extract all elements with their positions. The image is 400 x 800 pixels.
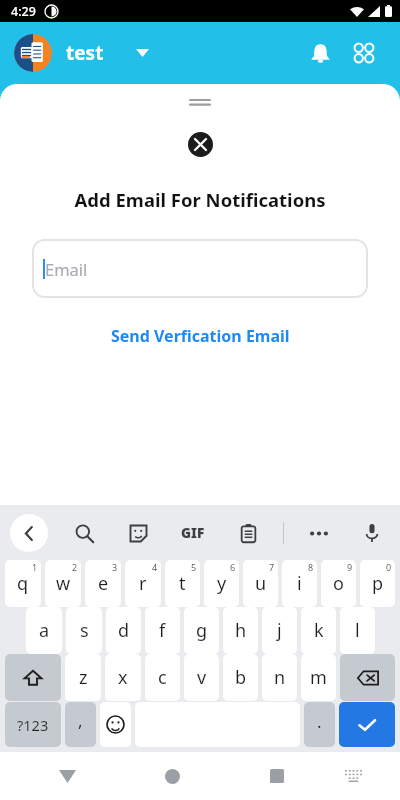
staticText: g (196, 618, 208, 643)
button[interactable]: Notifications (298, 31, 342, 75)
staticText: d (118, 618, 130, 643)
button[interactable]: s (66, 607, 102, 654)
button[interactable]: p (360, 560, 395, 607)
button[interactable]: Search (66, 515, 102, 551)
staticText: m (310, 665, 327, 690)
staticText: z (79, 665, 88, 690)
staticText: . (317, 710, 322, 733)
staticText: 9 (347, 561, 353, 573)
button[interactable]: h (223, 607, 258, 654)
button[interactable]: Emoji (100, 702, 131, 747)
staticText: 1 (32, 561, 38, 573)
button[interactable]: Back (45, 754, 89, 798)
staticText: s (80, 618, 89, 643)
button[interactable]: Shift (5, 654, 61, 701)
button[interactable]: j (262, 607, 297, 654)
button[interactable]: c (145, 654, 180, 701)
button[interactable]: m (301, 654, 336, 701)
button[interactable]: g (184, 607, 219, 654)
button[interactable]: Backspace (340, 654, 395, 701)
staticText: v (197, 665, 207, 690)
staticText: h (235, 618, 247, 643)
button[interactable]: l (340, 607, 375, 654)
staticText: o (333, 571, 344, 596)
staticText: 4 (152, 561, 158, 573)
staticText: 7 (269, 561, 275, 573)
button[interactable]: n (262, 654, 297, 701)
staticText: t (179, 571, 186, 596)
button[interactable]: r (125, 560, 161, 607)
staticText: q (17, 571, 29, 596)
button[interactable]: t (165, 560, 200, 607)
staticText: a (39, 618, 50, 643)
staticText: f (159, 618, 166, 643)
button[interactable]: Email (32, 239, 368, 298)
staticText: test (66, 40, 104, 66)
button[interactable]: z (65, 654, 101, 701)
staticText: Add Email For Notifications (74, 187, 326, 212)
button[interactable]: Stickers (120, 515, 156, 551)
button[interactable]: More options (301, 515, 337, 551)
button[interactable]: Home (150, 754, 194, 798)
button[interactable]: Enter (339, 702, 395, 747)
staticText: 0 (386, 561, 392, 573)
staticText: r (139, 571, 147, 596)
staticText: c (158, 665, 167, 690)
button[interactable]: Recents (255, 754, 299, 798)
staticText: 2 (72, 561, 78, 573)
staticText: e (98, 571, 109, 596)
button[interactable]: f (145, 607, 180, 654)
button[interactable]: . (304, 702, 335, 747)
staticText: 6 (230, 561, 236, 573)
staticText: b (235, 665, 247, 690)
button[interactable]: ?123 (5, 702, 61, 747)
staticText: Send Verfication Email (111, 325, 290, 347)
button[interactable]: b (223, 654, 258, 701)
staticText: i (297, 571, 302, 596)
button[interactable] (14, 34, 52, 72)
staticText: y (217, 571, 227, 596)
staticText: w (56, 571, 71, 596)
button[interactable]: y (204, 560, 239, 607)
staticText: GIF (181, 524, 205, 542)
button[interactable]: o (321, 560, 356, 607)
staticText: Email (45, 258, 88, 280)
staticText: , (78, 709, 83, 732)
button[interactable]: w (45, 560, 81, 607)
staticText: 4:29 (11, 3, 36, 20)
button[interactable]: v (184, 654, 219, 701)
button[interactable]: Voice input (354, 515, 390, 551)
staticText: p (372, 571, 384, 596)
button[interactable]: Clipboard (230, 515, 266, 551)
staticText: 5 (191, 561, 197, 573)
button[interactable]: Switch keyboard (333, 756, 373, 796)
staticText: u (255, 571, 267, 596)
button[interactable]: Send Verfication Email (103, 321, 298, 351)
staticText: x (118, 665, 128, 690)
staticText: j (277, 618, 282, 643)
button[interactable]: Close (188, 132, 213, 157)
button[interactable]: GIF (173, 513, 213, 553)
button[interactable]: Apps (342, 31, 386, 75)
staticText: 3 (112, 561, 118, 573)
button[interactable]: , (65, 702, 96, 747)
staticText: l (355, 618, 360, 643)
button[interactable]: u (243, 560, 278, 607)
staticText: n (274, 665, 286, 690)
button[interactable]: i (282, 560, 317, 607)
button[interactable]: q (5, 560, 41, 607)
button[interactable]: Back (10, 514, 48, 552)
staticText: ?123 (17, 715, 49, 735)
button[interactable]: k (301, 607, 336, 654)
button[interactable]: test (66, 40, 149, 66)
staticText: k (314, 618, 324, 643)
staticText: 8 (308, 561, 314, 573)
button[interactable]: e (85, 560, 121, 607)
button[interactable]: a (26, 607, 62, 654)
button[interactable]: d (106, 607, 141, 654)
button[interactable]: x (105, 654, 141, 701)
